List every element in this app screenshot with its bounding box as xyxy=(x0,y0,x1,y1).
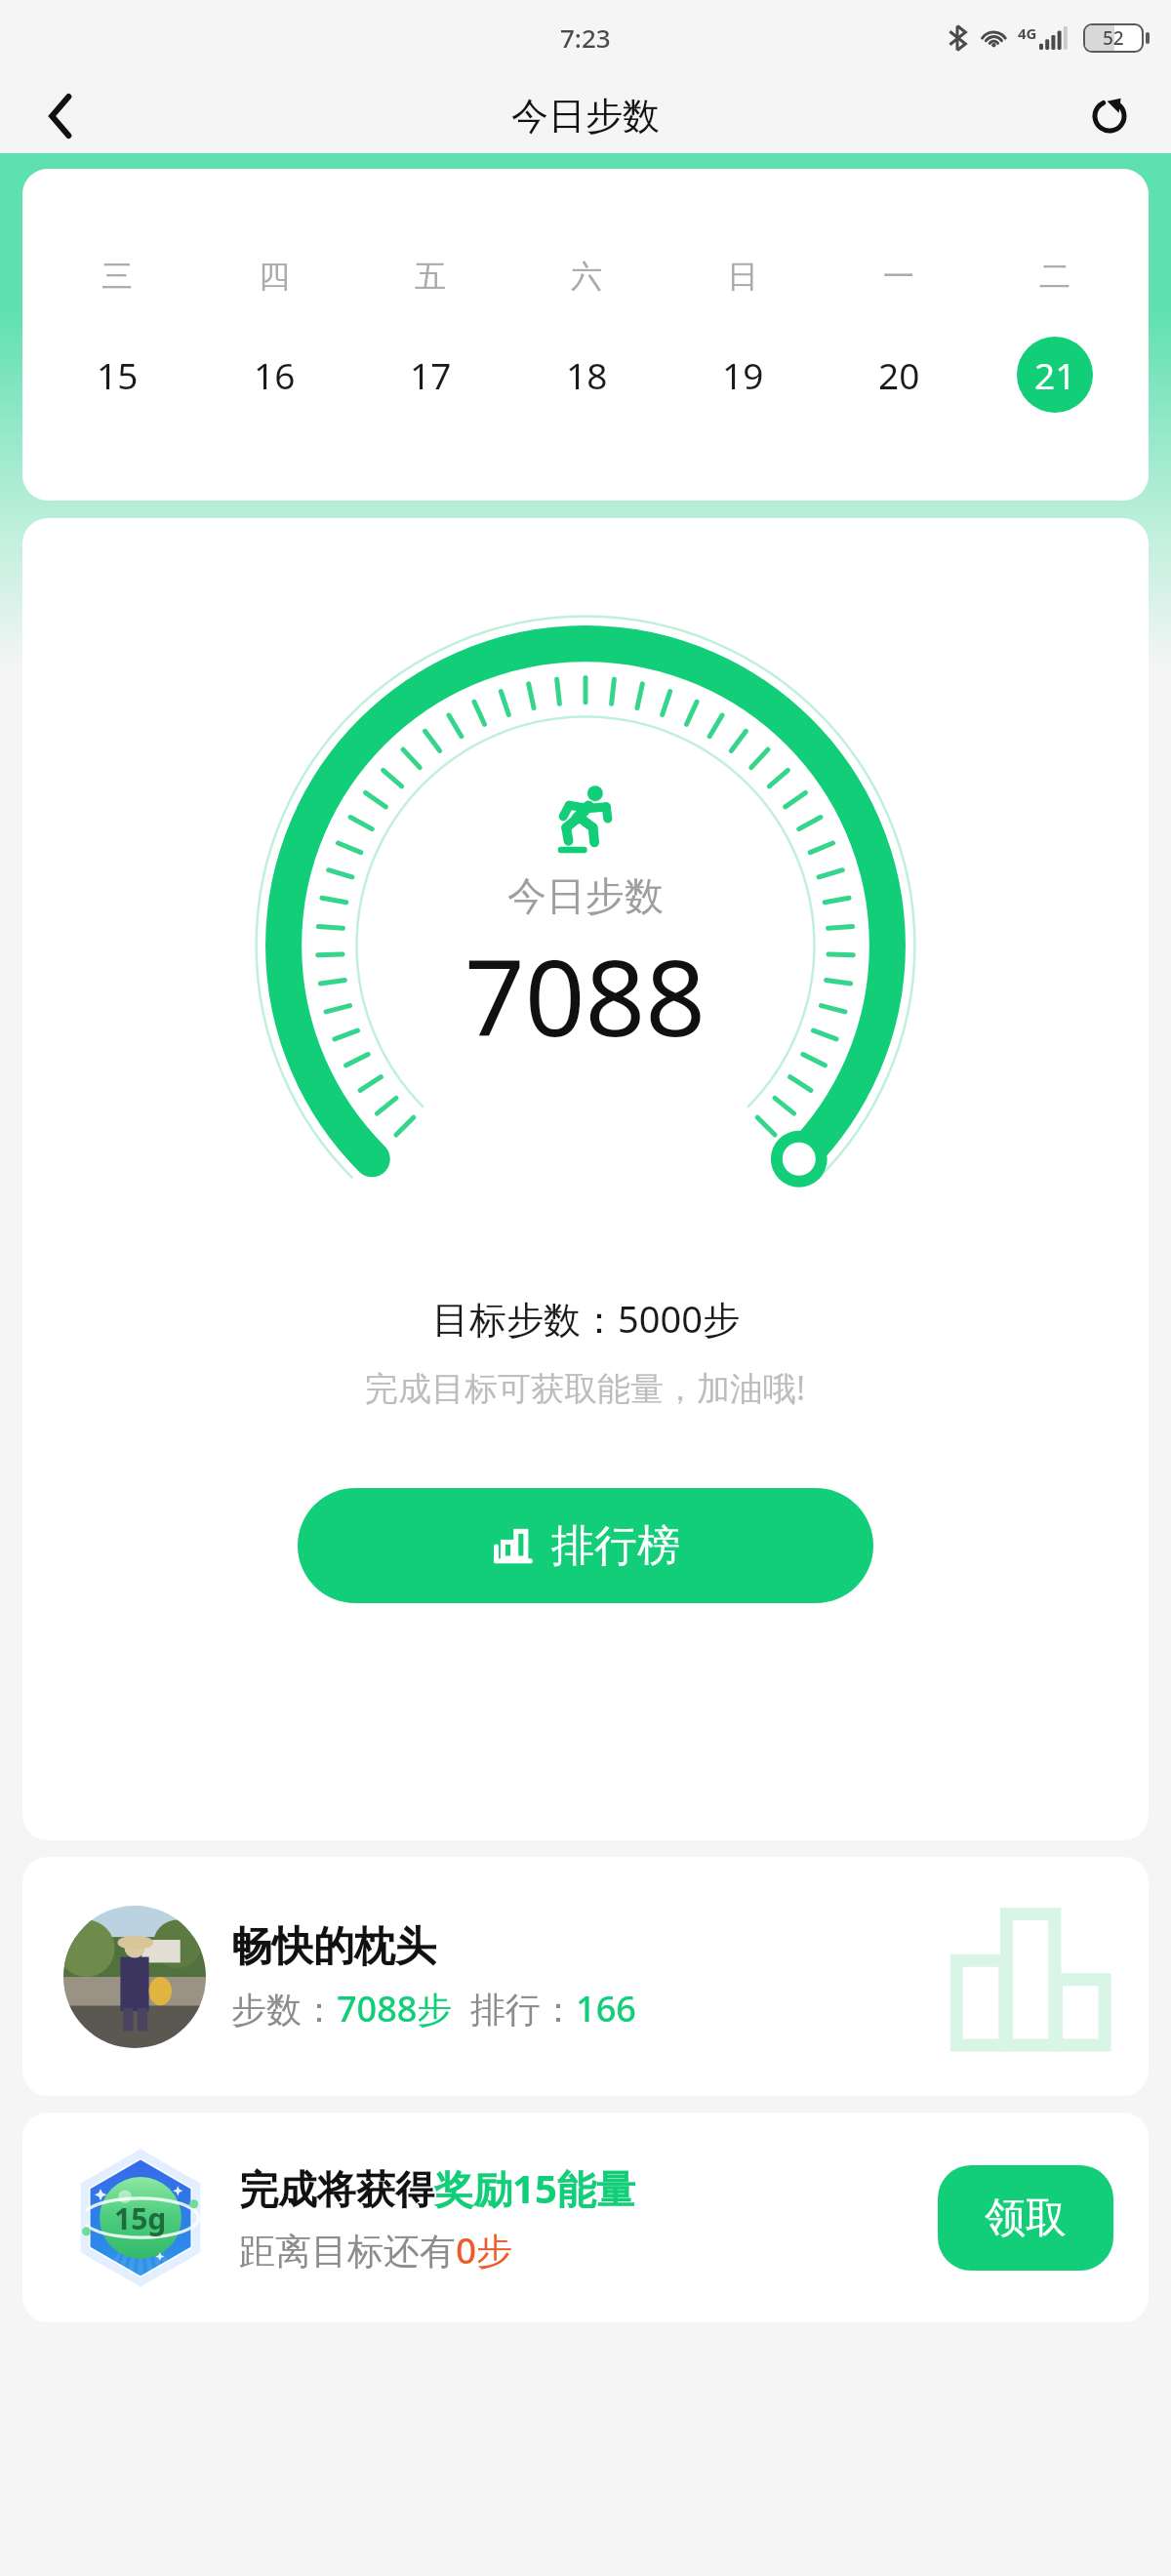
staticText: 排行榜 xyxy=(551,1519,680,1573)
staticText: 15g xyxy=(114,2198,167,2238)
button[interactable]: 领取 xyxy=(938,2165,1113,2271)
staticText: 六 xyxy=(571,257,602,296)
staticText: 三 xyxy=(101,257,133,296)
button[interactable]: 17 xyxy=(392,337,468,413)
button[interactable]: 20 xyxy=(861,337,937,413)
staticText: 7088 xyxy=(464,924,707,1067)
button[interactable]: Back xyxy=(33,89,88,143)
staticText: 18 xyxy=(566,350,608,399)
staticText: 步数：7088步 排行：166 xyxy=(231,1985,651,2033)
button[interactable]: 三 xyxy=(22,169,1149,501)
staticText: 完成目标可获取能量，加油哦! xyxy=(365,1365,806,1410)
staticText: 领取 xyxy=(985,2193,1067,2244)
staticText: 目标步数：5000步 xyxy=(432,1293,740,1344)
staticText: 今日步数 xyxy=(507,871,664,920)
staticText: 15 xyxy=(97,350,139,399)
staticText: 畅快的枕头 xyxy=(231,1921,436,1973)
button[interactable]: 19 xyxy=(705,337,781,413)
button[interactable]: 16 xyxy=(236,337,312,413)
button[interactable]: 15 xyxy=(79,337,155,413)
staticText: 一 xyxy=(883,257,914,296)
staticText: 21 xyxy=(1034,350,1076,399)
staticText: 20 xyxy=(878,350,920,399)
button[interactable]: 18 xyxy=(548,337,625,413)
staticText: 距离目标还有0步 xyxy=(239,2225,513,2274)
staticText: 今日步数 xyxy=(511,93,660,140)
staticText: 五 xyxy=(415,257,446,296)
staticText: 7:23 xyxy=(560,20,611,55)
staticText: 完成将获得奖励15能量 xyxy=(239,2161,635,2215)
staticText: 四 xyxy=(259,257,290,296)
staticText: 19 xyxy=(722,350,764,399)
button[interactable]: 排行榜 xyxy=(298,1488,873,1603)
staticText: 52 xyxy=(1103,25,1124,51)
button[interactable]: Refresh xyxy=(1081,88,1138,144)
button[interactable]: 畅快的枕头 xyxy=(22,1857,1149,2096)
button[interactable]: 21 xyxy=(1017,337,1093,413)
staticText: 日 xyxy=(727,257,758,296)
staticText: 17 xyxy=(410,350,452,399)
staticText: 16 xyxy=(254,350,296,399)
staticText: 二 xyxy=(1039,257,1070,296)
staticText: 4G xyxy=(1018,23,1037,43)
